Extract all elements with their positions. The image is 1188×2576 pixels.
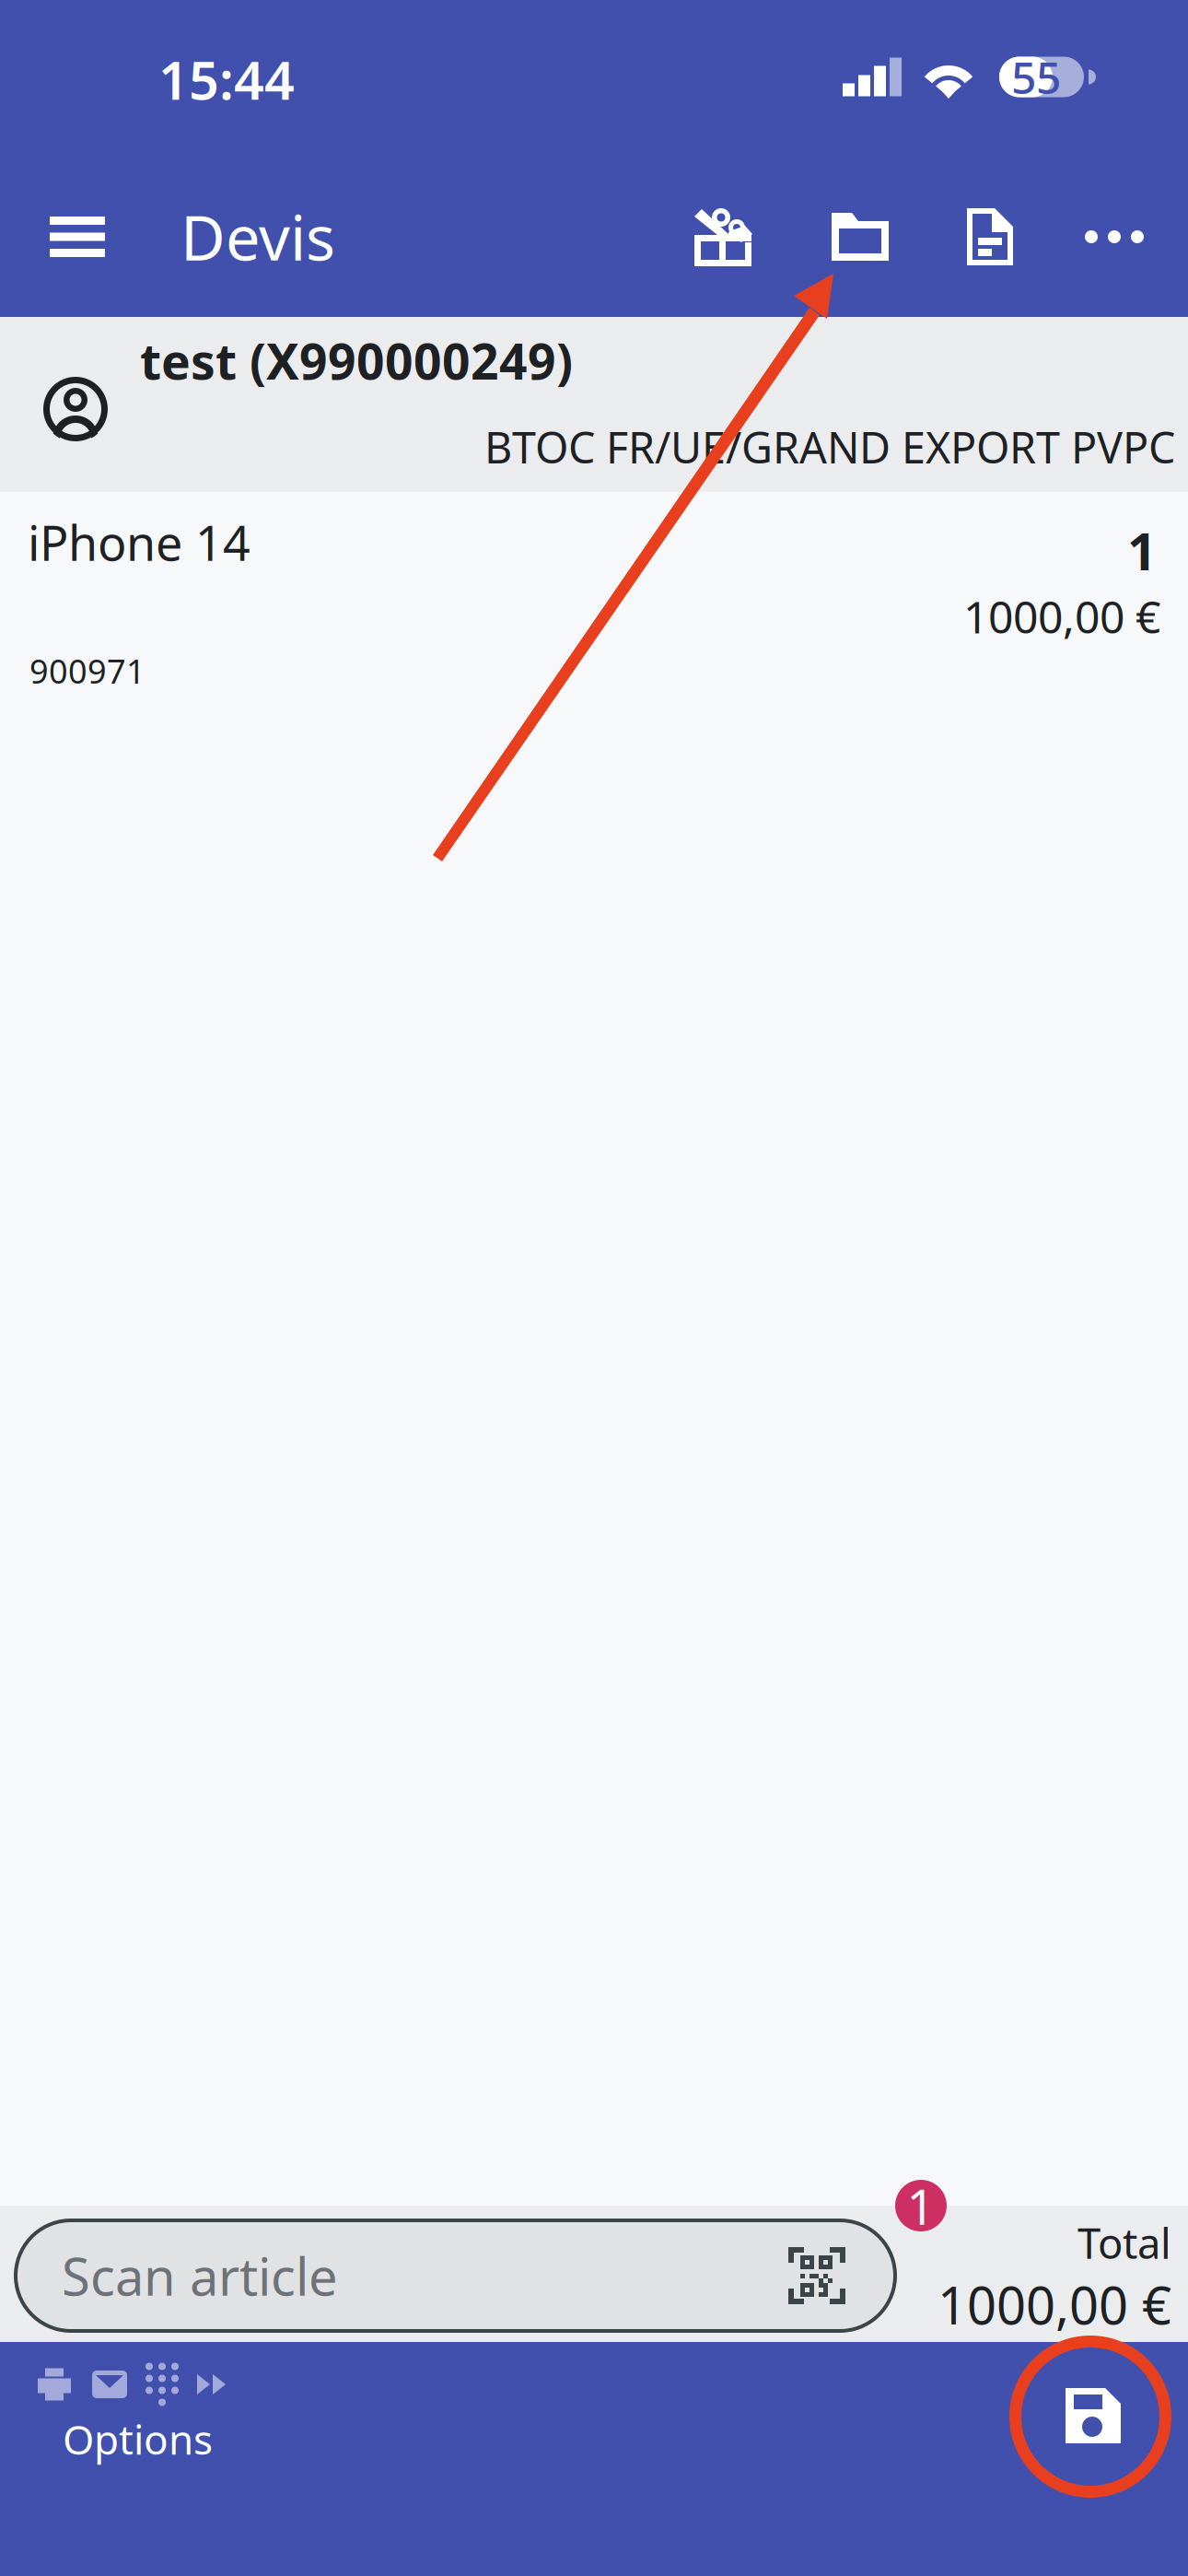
staticText: 1000,00 € [938, 2270, 1171, 2339]
button[interactable]: Save [1019, 2342, 1167, 2489]
button[interactable]: Options [0, 2342, 257, 2477]
staticText: 1000,00 € [963, 587, 1160, 646]
staticText: test (X990000249) [140, 328, 573, 393]
button[interactable]: Devis [129, 157, 357, 317]
button[interactable]: Menu [26, 157, 129, 317]
staticText: 900971 [29, 649, 146, 693]
staticText: 1 [907, 2173, 935, 2238]
button[interactable]: Document [924, 157, 1056, 317]
staticText: BTOC FR/UE/GRAND EXPORT PVPC [484, 418, 1175, 475]
button[interactable]: Gift [622, 157, 797, 317]
staticText: Total [1077, 2215, 1171, 2270]
button[interactable]: test (X990000249) [0, 317, 1188, 496]
button[interactable]: Folder [797, 157, 924, 317]
staticText: Options [63, 2412, 213, 2466]
button[interactable]: Scan article [16, 2220, 895, 2331]
staticText: iPhone 14 [28, 511, 250, 574]
staticText: Scan article [62, 2241, 338, 2310]
staticText: Devis [181, 196, 335, 278]
staticText: 1 [1127, 516, 1157, 585]
staticText: 15:44 [158, 44, 295, 114]
button[interactable]: More options [1056, 157, 1172, 317]
button[interactable]: iPhone 14 [0, 496, 1188, 689]
staticText: 55 [1011, 48, 1061, 106]
